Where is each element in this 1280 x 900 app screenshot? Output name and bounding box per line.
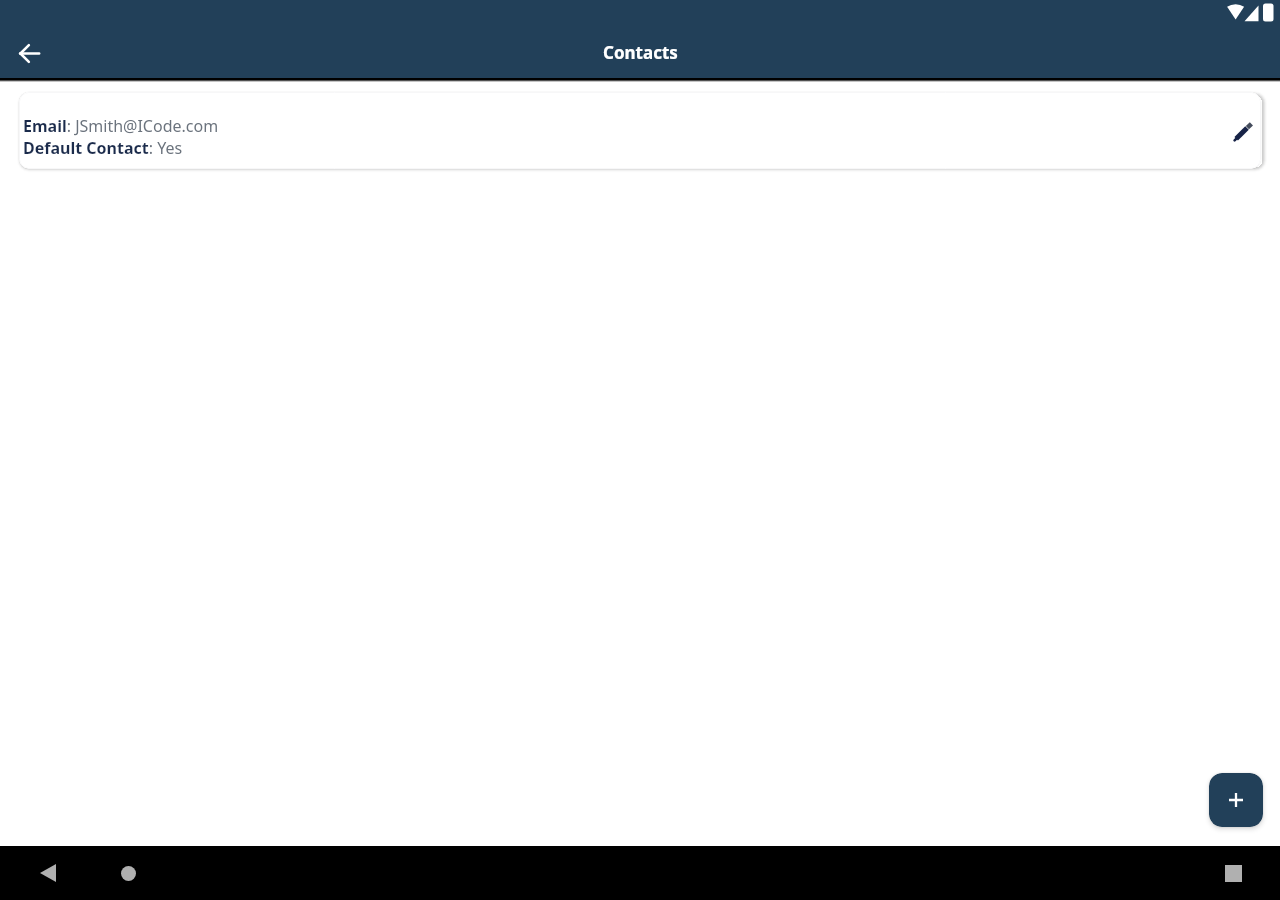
button[interactable]: Edit <box>1223 112 1261 152</box>
staticText: Default Contact: Yes <box>23 137 183 159</box>
staticText: Email: JSmith@ICode.com <box>23 115 219 137</box>
button[interactable]: Home <box>108 853 148 893</box>
button[interactable]: Recents <box>1213 853 1253 893</box>
button[interactable]: Add contact <box>1209 773 1263 827</box>
staticText: Contacts <box>603 41 678 64</box>
button[interactable]: Email: JSmith@ICode.com <box>19 92 1261 169</box>
button[interactable]: Back <box>9 33 49 73</box>
button[interactable]: Back <box>28 853 68 893</box>
